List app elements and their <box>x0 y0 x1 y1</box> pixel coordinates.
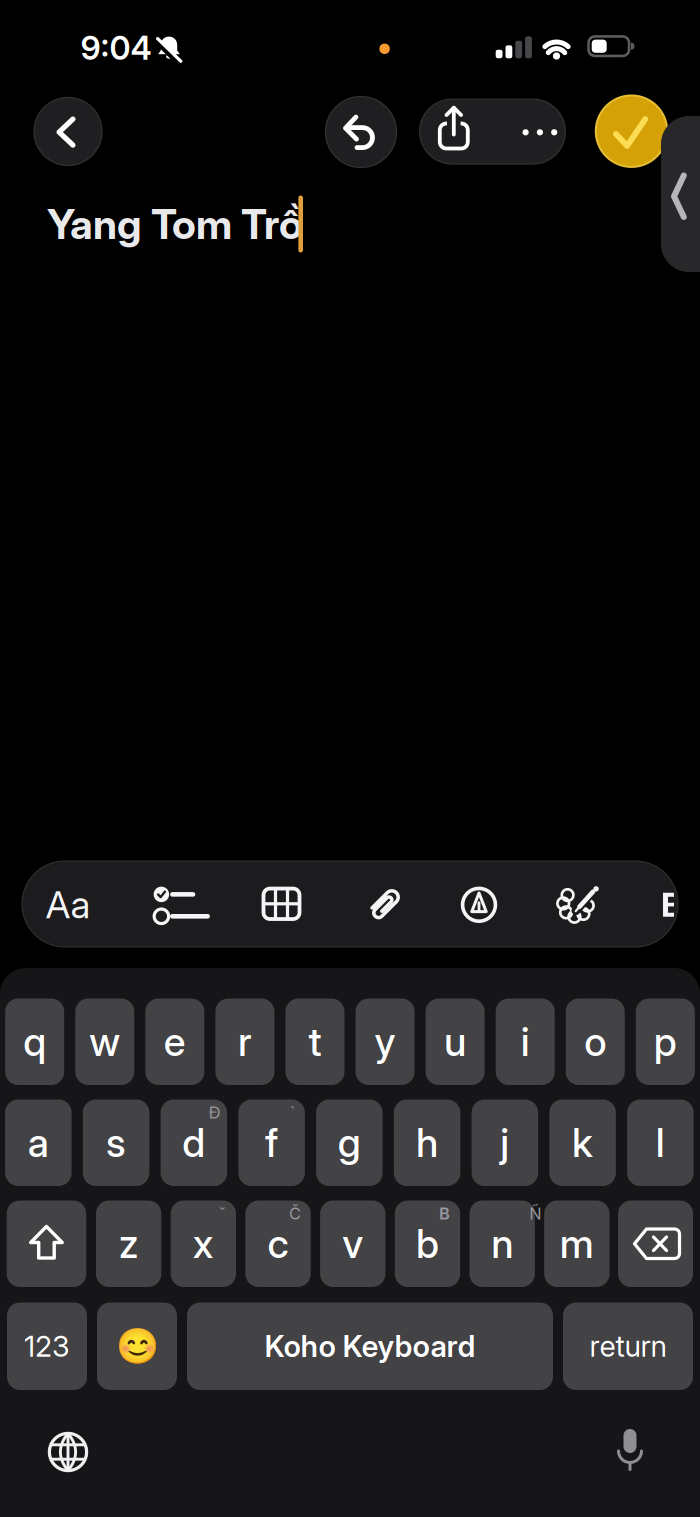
staticText: n <box>491 1220 513 1268</box>
staticText: j <box>500 1119 509 1167</box>
staticText: t <box>308 1018 321 1066</box>
staticText: q <box>23 1018 46 1066</box>
button[interactable]: Dictation <box>606 1426 654 1474</box>
button[interactable]: Table <box>256 882 306 926</box>
button[interactable]: r <box>215 998 274 1085</box>
button[interactable]: Share <box>434 103 474 153</box>
button[interactable]: g <box>316 1099 383 1186</box>
button[interactable]: Markup <box>457 883 501 927</box>
staticText: z <box>119 1220 139 1268</box>
button[interactable]: i <box>496 998 555 1085</box>
staticText: w <box>89 1018 120 1066</box>
button[interactable]: Delete <box>618 1200 693 1287</box>
button[interactable]: Format <box>35 871 101 937</box>
staticText: ˘ <box>219 1204 225 1223</box>
staticText: B <box>661 884 683 925</box>
staticText: v <box>342 1220 363 1268</box>
button[interactable]: Undo <box>325 96 396 167</box>
staticText: 😊 <box>115 1326 158 1366</box>
button[interactable]: Emoji <box>97 1302 177 1390</box>
staticText: f <box>265 1119 278 1167</box>
button[interactable]: Done <box>596 95 667 167</box>
button[interactable]: More <box>518 110 562 154</box>
button[interactable]: m <box>544 1200 609 1287</box>
staticText: i <box>521 1018 530 1066</box>
button[interactable]: q <box>5 998 64 1085</box>
button[interactable]: Hide panel <box>661 116 700 272</box>
button[interactable]: Koho Keyboard <box>187 1302 553 1390</box>
staticText: u <box>444 1018 466 1066</box>
staticText: h <box>416 1119 438 1167</box>
button[interactable]: l <box>627 1099 694 1186</box>
staticText: a <box>28 1119 49 1167</box>
staticText: Đ <box>209 1103 221 1122</box>
staticText: g <box>338 1119 361 1167</box>
staticText: o <box>584 1018 606 1066</box>
button[interactable]: Checklist <box>152 880 210 930</box>
button[interactable]: Back <box>34 97 102 165</box>
staticText: ` <box>290 1103 295 1122</box>
staticText: b <box>416 1220 439 1268</box>
button[interactable]: f <box>238 1099 305 1186</box>
button[interactable]: Bold <box>661 882 673 926</box>
button[interactable]: t <box>285 998 344 1085</box>
staticText: Yang Tom Trồ <box>47 199 303 249</box>
staticText: d <box>182 1119 205 1167</box>
button[interactable]: w <box>75 998 134 1085</box>
staticText: c <box>268 1220 289 1268</box>
staticText: return <box>589 1329 666 1364</box>
button[interactable]: return <box>563 1302 693 1390</box>
staticText: r <box>238 1018 252 1066</box>
staticText: y <box>374 1018 395 1066</box>
staticText: k <box>572 1119 593 1167</box>
staticText: x <box>193 1220 214 1268</box>
staticText: m <box>560 1220 594 1268</box>
staticText: s <box>106 1119 126 1167</box>
button[interactable]: 123 <box>7 1302 87 1390</box>
button[interactable]: Attach <box>363 883 407 927</box>
staticText: p <box>654 1018 677 1066</box>
button[interactable]: x <box>171 1200 236 1287</box>
staticText: 123 <box>24 1329 70 1364</box>
button[interactable]: k <box>549 1099 616 1186</box>
button[interactable]: z <box>96 1200 161 1287</box>
staticText: e <box>164 1018 186 1066</box>
button[interactable]: n <box>469 1200 535 1287</box>
staticText: Č <box>289 1204 301 1223</box>
button[interactable]: o <box>566 998 625 1085</box>
button[interactable]: a <box>5 1099 72 1186</box>
staticText: l <box>656 1119 665 1167</box>
button[interactable]: v <box>320 1200 385 1287</box>
button[interactable]: b <box>395 1200 460 1287</box>
button[interactable]: s <box>83 1099 149 1186</box>
button[interactable]: y <box>355 998 414 1085</box>
button[interactable]: c <box>245 1200 311 1287</box>
staticText: B <box>439 1204 450 1223</box>
button[interactable]: u <box>426 998 485 1085</box>
staticText: Koho Keyboard <box>264 1328 475 1364</box>
button[interactable]: p <box>636 998 695 1085</box>
staticText: Aa <box>45 882 90 927</box>
staticText: Ñ <box>529 1204 541 1223</box>
button[interactable]: e <box>145 998 204 1085</box>
button[interactable]: Shift <box>7 1200 86 1287</box>
staticText: 9:04 <box>80 28 151 68</box>
button[interactable]: j <box>472 1099 538 1186</box>
button[interactable]: d <box>161 1099 227 1186</box>
button[interactable]: Next keyboard <box>44 1428 92 1476</box>
button[interactable]: Writing Tools <box>550 879 600 929</box>
button[interactable]: h <box>394 1099 460 1186</box>
